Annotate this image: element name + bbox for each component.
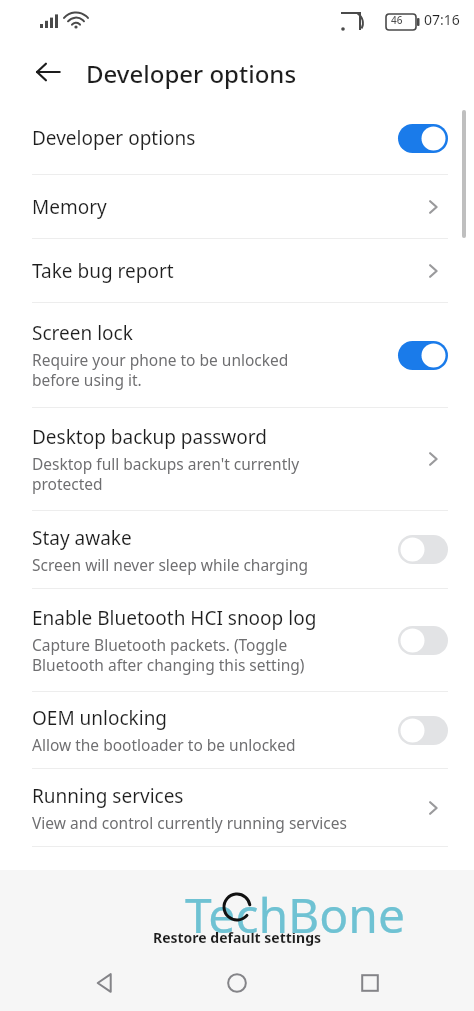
button[interactable]: Open [418, 793, 448, 823]
button[interactable]: Back [77, 955, 133, 1011]
button[interactable]: Screen lock [0, 303, 474, 407]
button[interactable]: Toggle on [398, 124, 448, 153]
button[interactable]: Recents [342, 955, 398, 1011]
staticText: Desktop full backups aren't currently pr… [32, 453, 300, 495]
staticText: Screen lock [32, 320, 133, 346]
staticText: View and control currently running servi… [32, 812, 347, 833]
staticText: Allow the bootloader to be unlocked [32, 734, 296, 755]
button[interactable]: Toggle off [398, 626, 448, 655]
button[interactable]: Toggle off [398, 716, 448, 745]
staticText: Enable Bluetooth HCI snoop log [32, 605, 317, 631]
button[interactable]: Toggle on [398, 341, 448, 370]
button[interactable]: Enable Bluetooth HCI snoop log [0, 589, 474, 691]
button[interactable]: Developer options [0, 102, 474, 174]
staticText: Capture Bluetooth packets. (Toggle Bluet… [32, 634, 305, 676]
staticText: OEM unlocking [32, 705, 168, 731]
staticText: Running services [32, 783, 184, 809]
staticText: 46 [391, 13, 403, 27]
button[interactable]: Take bug report [0, 239, 474, 302]
staticText: Take bug report [32, 258, 174, 284]
staticText: Stay awake [32, 525, 132, 551]
button[interactable]: Back [26, 50, 70, 94]
button[interactable]: Toggle off [398, 535, 448, 564]
button[interactable]: Open [418, 444, 448, 474]
button[interactable]: OEM unlocking [0, 692, 474, 768]
staticText: Screen will never sleep while charging [32, 554, 309, 575]
staticText: Developer options [86, 57, 297, 90]
staticText: TechBone [185, 882, 406, 947]
button[interactable]: Home [209, 955, 265, 1011]
button[interactable]: Open [418, 256, 448, 286]
staticText: Developer options [32, 125, 196, 151]
staticText: Desktop backup password [32, 424, 267, 450]
button[interactable]: Memory [0, 175, 474, 238]
button[interactable]: Desktop backup password [0, 408, 474, 510]
staticText: Require your phone to be unlocked before… [32, 349, 289, 391]
staticText: Restore default settings [0, 928, 474, 947]
button[interactable]: Open [418, 192, 448, 222]
staticText: Memory [32, 194, 107, 220]
button[interactable]: Running services [0, 769, 474, 846]
button[interactable]: Stay awake [0, 511, 474, 588]
staticText: 07:16 [424, 10, 460, 29]
